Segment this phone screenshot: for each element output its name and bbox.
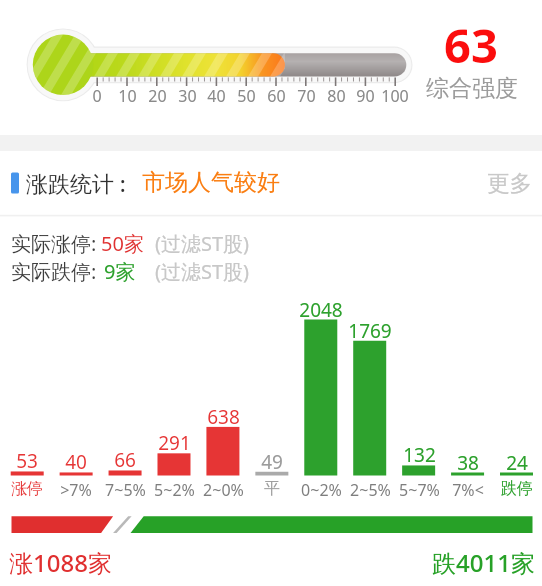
button[interactable]: 7~5% [98, 479, 152, 501]
staticText: 40 [207, 85, 226, 107]
button[interactable]: >7% [49, 479, 103, 501]
staticText: 实际涨停: [11, 230, 97, 257]
staticText: (过滤ST股) [155, 230, 250, 257]
staticText: 100 [381, 85, 409, 107]
staticText: 5~7% [399, 479, 440, 501]
button[interactable]: 涨1088家 [9, 546, 112, 579]
button[interactable]: 0~2% [294, 479, 348, 501]
button[interactable]: 涨跌统计 : [26, 168, 126, 198]
staticText: 30 [178, 85, 197, 107]
staticText: 10 [118, 85, 137, 107]
staticText: 9家 [104, 258, 136, 285]
staticText: 80 [327, 85, 346, 107]
staticText: 40 [65, 449, 87, 475]
staticText: 20 [148, 85, 167, 107]
staticText: 市场人气较好 [142, 168, 280, 197]
staticText: 7%< [452, 479, 484, 501]
button[interactable]: 跌4011家 [330, 546, 535, 579]
staticText: 实际跌停: [11, 258, 97, 285]
staticText: 0~2% [301, 479, 342, 501]
staticText: 50家 [101, 230, 144, 257]
staticText: 2~0% [203, 479, 244, 501]
staticText: 66 [114, 447, 136, 473]
staticText: 90 [356, 85, 375, 107]
staticText: 2048 [299, 297, 343, 323]
button[interactable]: 5~2% [147, 479, 201, 501]
button[interactable]: 2~5% [343, 479, 397, 501]
staticText: 60 [267, 85, 286, 107]
button[interactable]: 更多 [487, 169, 532, 197]
staticText: 涨跌统计 : [26, 168, 126, 198]
staticText: 平 [264, 479, 280, 499]
staticText: 跌停 [501, 479, 533, 499]
button[interactable]: 跌停 [490, 479, 542, 499]
staticText: 50 [237, 85, 256, 107]
staticText: 53 [16, 448, 38, 474]
staticText: 24 [506, 450, 528, 476]
staticText: 38 [457, 450, 479, 476]
staticText: 291 [158, 430, 191, 456]
button[interactable]: 2~0% [196, 479, 250, 501]
staticText: 0 [92, 85, 102, 107]
staticText: 跌4011家 [432, 546, 535, 579]
button[interactable]: 实际涨停: [11, 230, 97, 257]
staticText: 70 [297, 85, 316, 107]
staticText: 涨停 [11, 479, 43, 499]
staticText: 63 [444, 13, 498, 77]
staticText: (过滤ST股) [155, 258, 250, 285]
button[interactable]: 平 [245, 479, 299, 499]
staticText: 2~5% [350, 479, 391, 501]
staticText: 涨1088家 [9, 546, 112, 579]
staticText: 132 [403, 442, 436, 468]
staticText: >7% [60, 479, 92, 501]
staticText: 1769 [348, 318, 392, 344]
staticText: 5~2% [154, 479, 195, 501]
button[interactable]: 涨停 [0, 479, 54, 499]
staticText: 7~5% [105, 479, 146, 501]
staticText: 更多 [487, 169, 532, 197]
staticText: 49 [261, 449, 283, 475]
staticText: 638 [207, 404, 240, 430]
button[interactable]: 5~7% [392, 479, 446, 501]
staticText: 综合强度 [426, 74, 518, 103]
button[interactable]: 7%< [441, 479, 495, 501]
button[interactable]: 实际跌停: [11, 258, 97, 285]
